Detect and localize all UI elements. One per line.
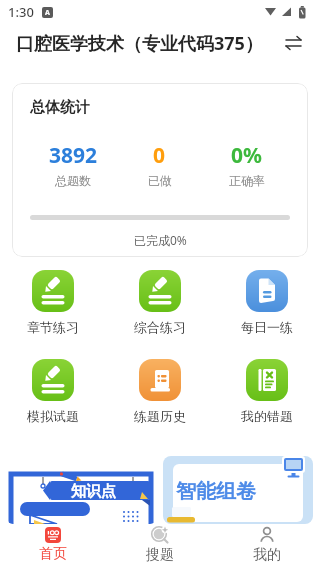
staticText: 知识点 (71, 482, 116, 501)
staticText: 首页 (39, 545, 67, 563)
button[interactable]: 知识点 (7, 456, 156, 524)
staticText: 1:30 (8, 3, 34, 21)
staticText: 智能组卷 (175, 478, 255, 503)
button[interactable] (285, 36, 303, 50)
staticText: 智能组卷 (177, 478, 257, 503)
staticText: 章节练习 (27, 319, 79, 335)
button[interactable]: 模拟试题 (0, 359, 106, 424)
staticText: 3892 (49, 141, 98, 170)
button[interactable]: 首页 (0, 524, 106, 566)
staticText: 总体统计 (30, 98, 90, 117)
staticText: 我的错题 (241, 408, 293, 424)
staticText: 智能组卷 (177, 480, 257, 505)
staticText: 0% (231, 141, 262, 170)
staticText: 综合练习 (134, 319, 186, 335)
button[interactable]: 搜题 (106, 524, 213, 566)
button[interactable]: 练题历史 (106, 359, 213, 424)
staticText: 已完成0% (134, 232, 187, 248)
button[interactable]: 章节练习 (0, 270, 106, 335)
button[interactable]: 智能组卷 (163, 456, 313, 524)
staticText: 练题历史 (134, 408, 186, 424)
staticText: 每日一练 (241, 319, 293, 335)
button[interactable]: 综合练习 (106, 270, 213, 335)
staticText: 智能组卷 (175, 480, 255, 505)
staticText: 口腔医学技术（专业代码375） (16, 31, 263, 56)
staticText: 正确率 (229, 173, 265, 188)
staticText: 0 (153, 141, 166, 170)
staticText: 搜题 (146, 546, 174, 564)
staticText: 已做 (148, 173, 172, 188)
staticText: 总题数 (55, 173, 91, 188)
staticText: 模拟试题 (27, 408, 79, 424)
button[interactable]: 我的错题 (213, 359, 320, 424)
staticText: 我的 (253, 546, 281, 564)
button[interactable]: 每日一练 (213, 270, 320, 335)
button[interactable]: 我的 (213, 524, 320, 566)
staticText: 智能组卷 (176, 479, 256, 504)
staticText: A (45, 8, 50, 18)
